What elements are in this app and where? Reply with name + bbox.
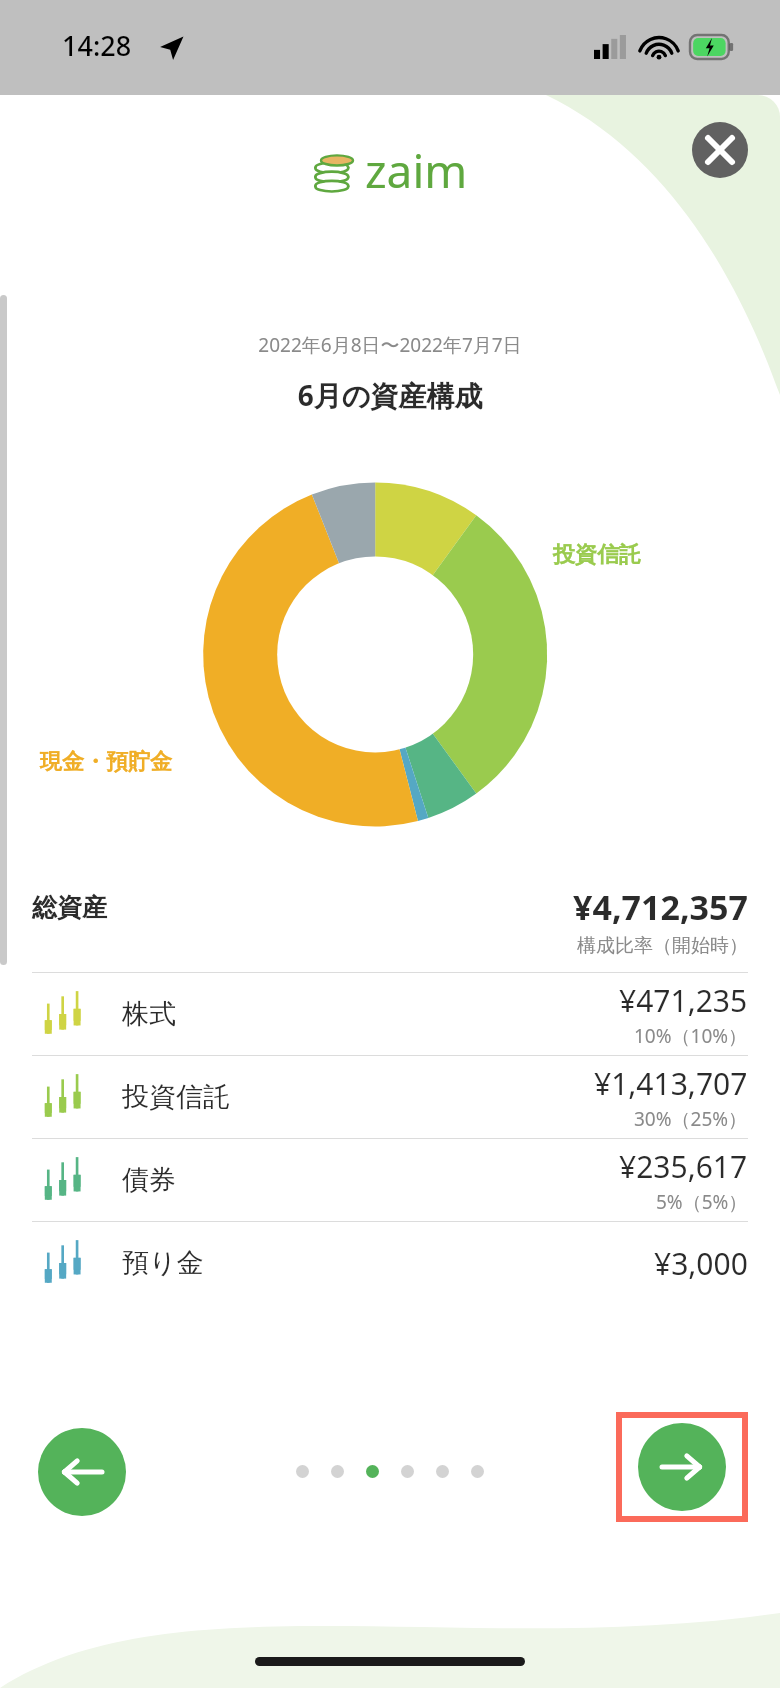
button[interactable]: 次へ	[638, 1423, 726, 1511]
staticText: 債券	[122, 1163, 176, 1197]
staticText: 総資産	[32, 892, 107, 923]
staticText: 10%（10%）	[634, 1023, 748, 1049]
button[interactable]: 投資信託	[32, 1056, 748, 1138]
button[interactable]: 株式	[32, 973, 748, 1055]
button[interactable]: 預り金	[32, 1222, 748, 1304]
staticText: 株式	[122, 997, 176, 1031]
staticText: 30%（25%）	[634, 1106, 748, 1132]
staticText: zaim	[365, 139, 468, 202]
staticText: 現金・預貯金	[40, 748, 172, 776]
staticText: 14:28	[62, 27, 132, 64]
staticText: 預り金	[122, 1246, 204, 1280]
staticText: ¥1,413,707	[594, 1063, 748, 1104]
staticText: ¥3,000	[654, 1243, 748, 1284]
staticText: 2022年6月8日〜2022年7月7日	[0, 332, 780, 358]
staticText: ¥235,617	[619, 1146, 748, 1187]
button[interactable]: 債券	[32, 1139, 748, 1221]
staticText: 構成比率（開始時）	[577, 934, 748, 958]
staticText: ¥471,235	[619, 980, 748, 1021]
staticText: 5%（5%）	[656, 1189, 748, 1215]
button[interactable]: 閉じる	[692, 122, 748, 178]
button[interactable]: 前へ	[38, 1428, 126, 1516]
staticText: 6月の資産構成	[0, 376, 780, 414]
staticText: 投資信託	[122, 1080, 230, 1114]
staticText: 投資信託	[553, 541, 641, 569]
staticText: ¥4,712,357	[573, 884, 748, 930]
